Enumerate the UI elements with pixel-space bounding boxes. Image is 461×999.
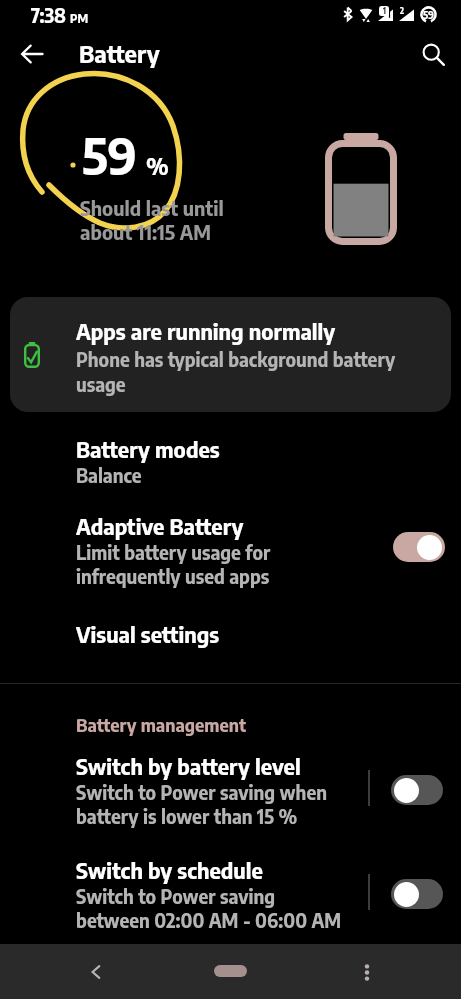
staticText: Should last until about 11:15 AM (80, 195, 224, 244)
staticText: Battery management (76, 713, 247, 735)
button[interactable]: Adaptive Battery (0, 512, 461, 592)
button[interactable]: Search (413, 37, 453, 71)
staticText: Adaptive Battery (76, 512, 244, 540)
staticText: Switch by battery level (76, 752, 301, 780)
staticText: Battery (79, 38, 160, 68)
staticText: Phone has typical background battery usa… (76, 347, 396, 396)
staticText: 7:38 (31, 3, 66, 27)
staticText: PM (70, 11, 89, 26)
button[interactable]: Navigate up (12, 37, 52, 71)
staticText: Battery modes (76, 435, 220, 463)
staticText: Limit battery usage for infrequently use… (76, 540, 271, 588)
button[interactable]: Off (391, 879, 443, 909)
button[interactable]: Home (214, 965, 247, 977)
staticText: Switch to Power saving between 02:00 AM … (76, 884, 342, 932)
staticText: 59 (423, 9, 434, 21)
button[interactable]: Visual settings (0, 620, 461, 652)
button[interactable]: On (393, 532, 445, 562)
staticText: Balance (76, 463, 142, 487)
staticText: 1 (383, 6, 386, 16)
staticText: % (146, 151, 169, 180)
button[interactable]: Switch by schedule (0, 856, 372, 932)
staticText: 2 (400, 6, 405, 16)
staticText: Switch by schedule (76, 856, 263, 884)
staticText: 59 (82, 123, 137, 186)
button[interactable]: Off (391, 775, 443, 805)
staticText: Switch to Power saving when battery is l… (76, 780, 327, 828)
button[interactable]: Apps are running normally (10, 297, 451, 412)
button[interactable]: Back (76, 953, 114, 991)
button[interactable]: Battery modes (0, 435, 461, 491)
staticText: Apps are running normally (76, 317, 336, 345)
staticText: Visual settings (76, 620, 220, 648)
button[interactable]: Recent apps (348, 953, 386, 991)
button[interactable]: Switch by battery level (0, 752, 372, 828)
